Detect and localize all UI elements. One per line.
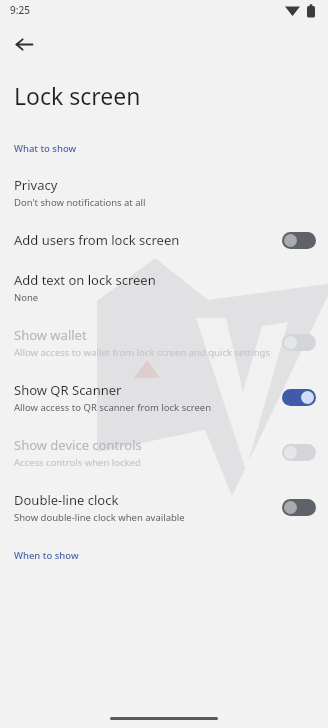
staticText: Lock screen [14,80,141,111]
staticText: None [14,291,39,304]
staticText: Show double-line clock when available [14,511,185,524]
staticText: Don't show notifications at all [14,196,146,209]
button[interactable]: Toggle [282,334,316,351]
button[interactable]: Show QR Scanner [0,370,328,425]
button[interactable]: Toggle [282,389,316,406]
staticText: Show wallet [14,326,87,344]
button[interactable]: Toggle [282,232,316,249]
button[interactable]: Double-line clock [0,480,328,535]
staticText: What to show [14,142,77,155]
staticText: Add users from lock screen [14,231,180,249]
staticText: When to show [14,549,79,562]
button[interactable]: Back [4,24,44,64]
button[interactable]: Add users from lock screen [0,220,328,260]
staticText: Add text on lock screen [14,271,156,289]
staticText: Double-line clock [14,491,119,509]
staticText: Privacy [14,176,58,194]
staticText: Show device controls [14,436,142,454]
button[interactable]: Add text on lock screen [0,260,328,315]
button[interactable]: Show wallet [0,315,328,370]
staticText: Access controls when locked [14,456,141,469]
staticText: Allow access to QR scanner from lock scr… [14,401,212,414]
staticText: 9:25 [10,3,30,17]
button[interactable]: Toggle [282,499,316,516]
button[interactable]: Privacy [0,165,328,220]
staticText: Show QR Scanner [14,381,122,399]
button[interactable]: Show device controls [0,425,328,480]
staticText: Allow access to wallet from lock screen … [14,346,271,359]
button[interactable]: Toggle [282,444,316,461]
